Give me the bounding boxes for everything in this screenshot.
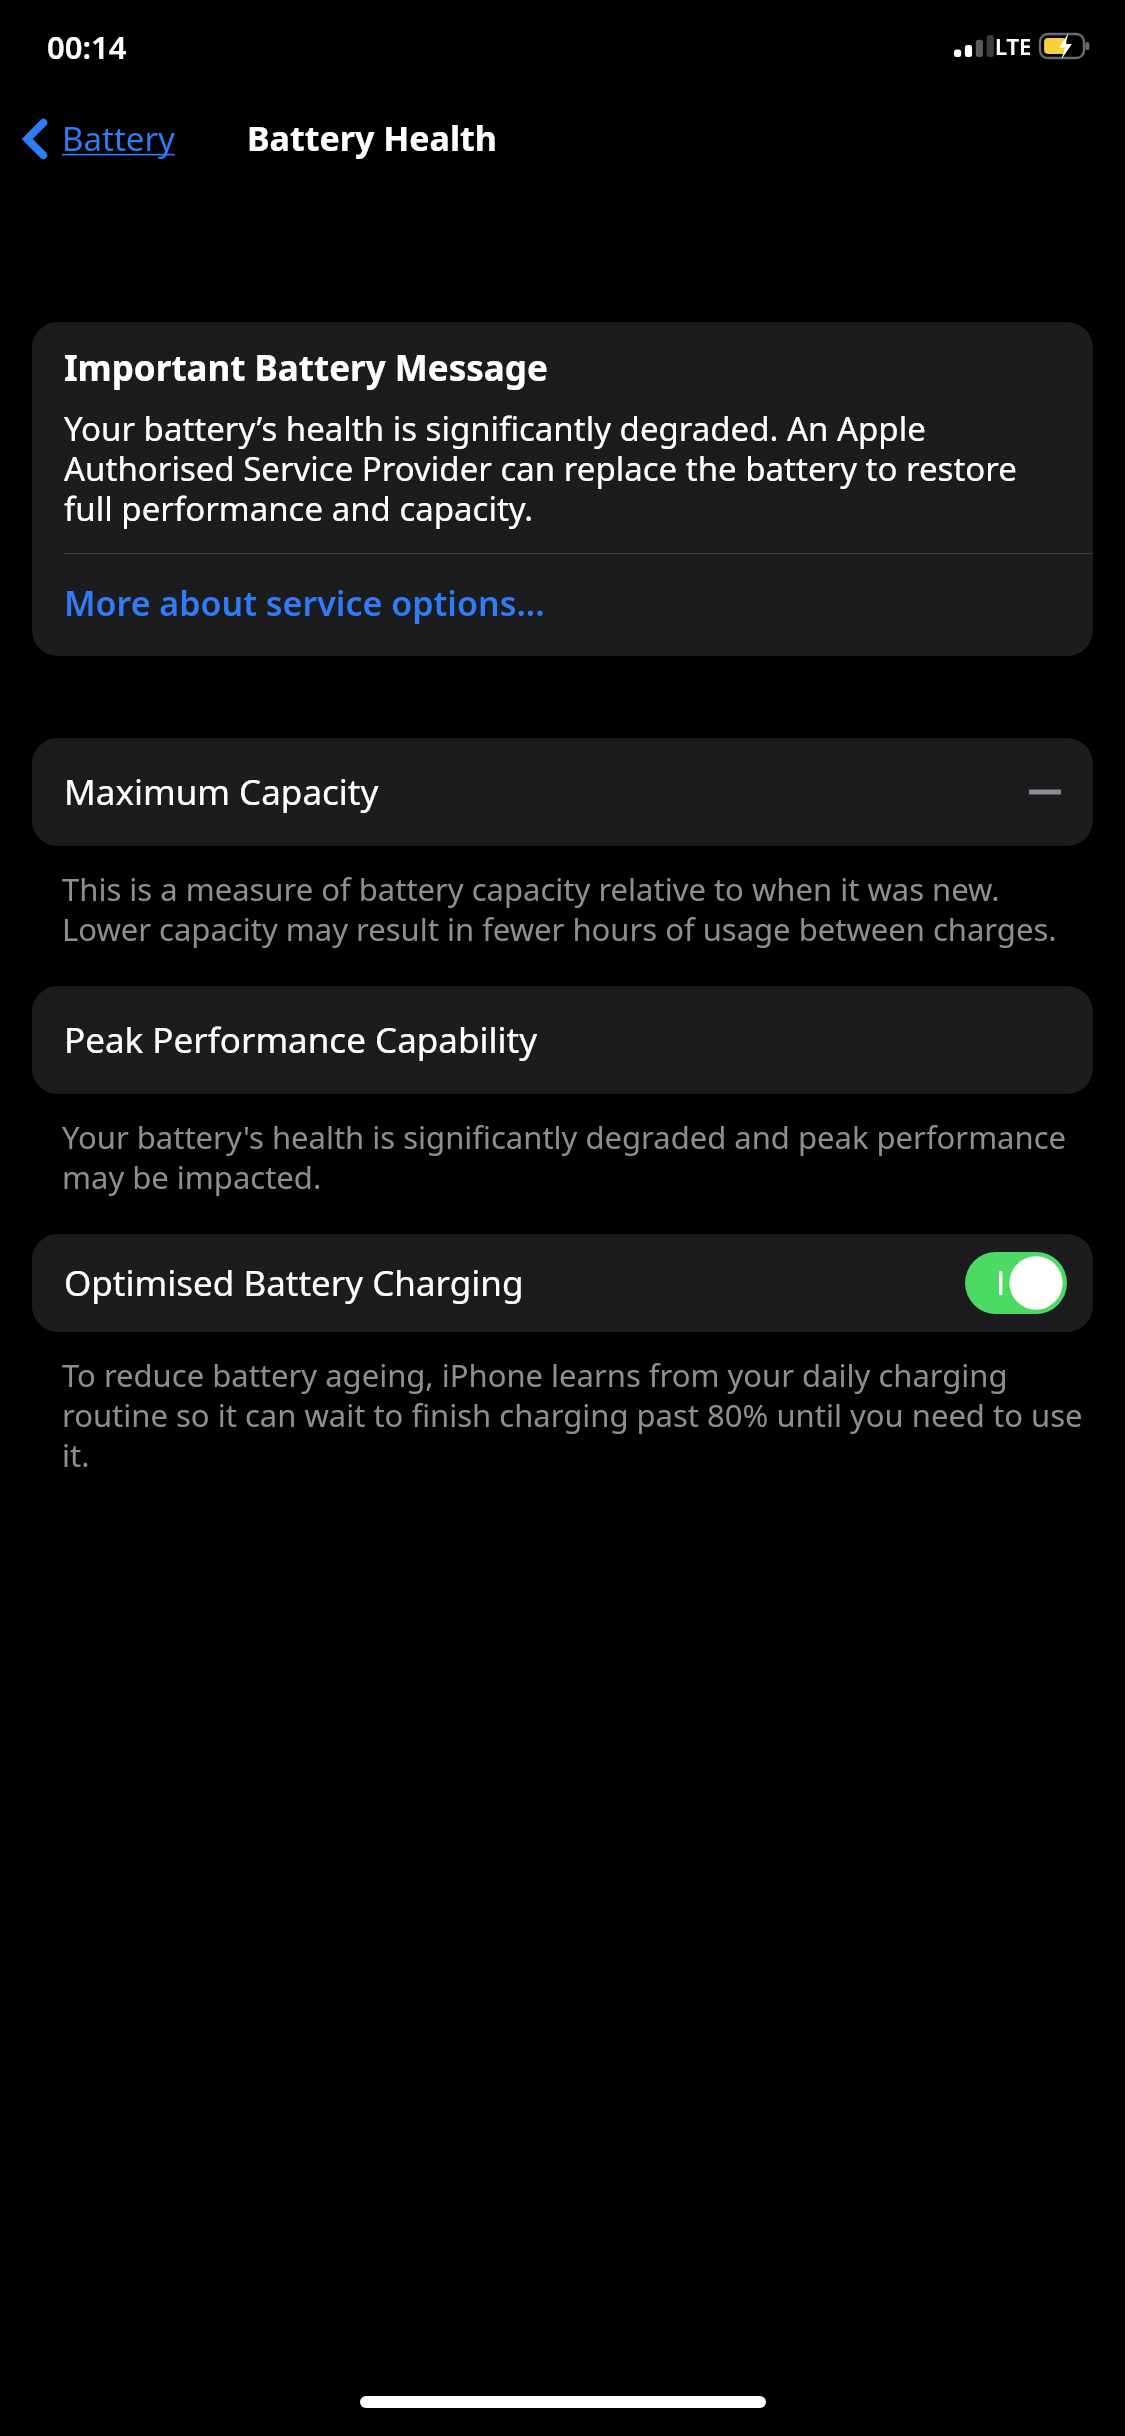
staticText: Important Battery Message bbox=[64, 344, 548, 392]
button[interactable]: Maximum Capacity bbox=[32, 738, 1093, 846]
staticText: This is a measure of battery capacity re… bbox=[62, 868, 1085, 950]
staticText: Peak Performance Capability bbox=[64, 1016, 538, 1064]
staticText: To reduce battery ageing, iPhone learns … bbox=[62, 1354, 1085, 1476]
button[interactable]: Battery bbox=[0, 106, 191, 171]
staticText: Your battery's health is significantly d… bbox=[62, 1116, 1085, 1198]
staticText: More about service options... bbox=[64, 580, 545, 626]
button[interactable]: Peak Performance Capability bbox=[32, 986, 1093, 1094]
staticText: Battery Health bbox=[247, 115, 497, 161]
staticText: Optimised Battery Charging bbox=[64, 1259, 524, 1307]
staticText: Battery bbox=[62, 116, 175, 161]
button[interactable]: Optimised Battery Charging bbox=[32, 1234, 1093, 1332]
staticText: 00:14 bbox=[47, 26, 127, 68]
button[interactable]: More about service options... bbox=[32, 554, 1093, 656]
staticText: Your battery’s health is significantly d… bbox=[64, 406, 1067, 531]
button[interactable]: Optimised Battery Charging toggle bbox=[965, 1252, 1067, 1314]
staticText: Maximum Capacity bbox=[64, 768, 379, 816]
staticText: LTE bbox=[995, 31, 1032, 61]
